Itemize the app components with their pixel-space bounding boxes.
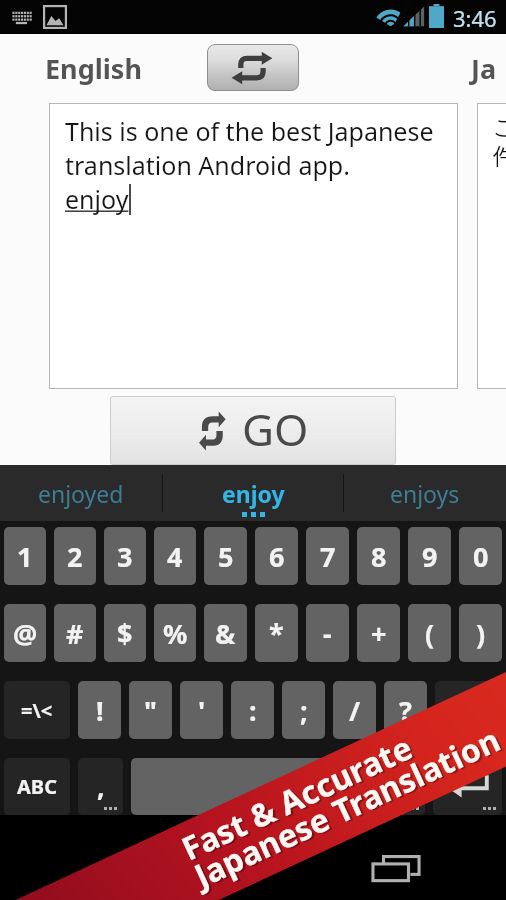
button[interactable]: - [306,604,349,662]
staticText: . [399,768,407,805]
staticText: , [97,768,105,805]
button[interactable]: , [78,758,123,815]
staticText: 9 [422,538,438,575]
staticText: * [269,615,284,652]
button[interactable]: 1 [4,527,46,585]
staticText: translation Android app. [65,148,350,182]
staticText: ABC [17,773,57,800]
staticText: ? [399,692,412,729]
button[interactable]: enjoys [344,465,506,521]
staticText: & [215,615,236,652]
button[interactable]: enjoyed [0,465,162,521]
staticText: Japanese Translation [187,717,506,897]
button[interactable]: ! [78,681,121,739]
staticText: : [249,692,257,729]
other: Screenshot captured [42,4,68,30]
staticText: 3 [117,538,133,575]
button[interactable]: + [357,604,400,662]
staticText: ( [425,615,435,652]
staticText: 6 [269,538,285,575]
button[interactable]: 8 [357,527,400,585]
staticText: @ [13,615,38,652]
staticText: Fast & Accurate [177,726,422,871]
button[interactable]: ABC [4,758,70,815]
staticText: GO [242,399,309,459]
staticText: 3:46 [453,3,497,33]
staticText: / [349,692,361,729]
staticText: 2 [67,538,83,575]
button[interactable]: 6 [255,527,298,585]
staticText: ; [300,692,308,729]
button[interactable]: 4 [154,527,196,585]
staticText: enjoyed [38,478,124,509]
staticText: Japanese Translation [190,718,506,898]
staticText: enjoys [390,478,460,509]
button[interactable] [433,758,502,815]
staticText: 8 [371,538,387,575]
button[interactable]: ? [384,681,427,739]
staticText: 0 [473,538,489,575]
button[interactable]: / [333,681,376,739]
staticText: + [371,615,387,652]
button[interactable] [131,758,372,815]
staticText: ) [476,615,486,652]
button[interactable]: . [380,758,425,815]
button[interactable]: 5 [204,527,247,585]
staticText: ' [198,692,206,729]
staticText: # [66,615,84,652]
button[interactable]: enjoy [163,465,343,521]
button[interactable]: ( [408,604,451,662]
button[interactable]: # [54,604,96,662]
button[interactable]: @ [4,604,46,662]
button[interactable]: % [154,604,196,662]
staticText: こ [493,113,506,142]
staticText: enjoy [222,478,285,509]
button[interactable]: =\< [4,681,70,739]
staticText: 5 [218,538,234,575]
staticText: English [45,50,142,87]
staticText: 4 [167,538,183,575]
staticText: =\< [21,697,53,724]
staticText: 7 [320,538,336,575]
other: Keyboard active [9,8,31,25]
button[interactable]: 7 [306,527,349,585]
button[interactable]: 0 [459,527,502,585]
button[interactable]: Recent apps [360,843,432,895]
button[interactable]: ) [459,604,502,662]
button[interactable]: 9 [408,527,451,585]
staticText: Fast & Accurate [174,725,420,870]
staticText: enjoy [65,182,129,216]
button[interactable]: * [255,604,298,662]
staticText: 件 [493,142,506,171]
button[interactable]: " [129,681,172,739]
staticText: ! [96,692,104,729]
staticText: % [163,615,188,652]
button[interactable]: & [204,604,247,662]
button[interactable] [435,681,502,739]
staticText: " [144,692,157,729]
staticText: Ja [471,50,497,87]
button[interactable]: 2 [54,527,96,585]
button[interactable]: $ [104,604,146,662]
button[interactable]: ; [282,681,325,739]
button[interactable]: ' [180,681,223,739]
button[interactable]: 3 [104,527,146,585]
staticText: $ [117,615,133,652]
staticText: 1 [17,538,33,575]
button[interactable]: : [231,681,274,739]
staticText: This is one of the best Japanese [65,114,434,148]
button[interactable]: Swap languages [207,44,299,91]
button[interactable]: This is one of the best Japanese [49,103,458,389]
staticText: - [323,615,332,652]
button[interactable]: GO [110,396,396,465]
